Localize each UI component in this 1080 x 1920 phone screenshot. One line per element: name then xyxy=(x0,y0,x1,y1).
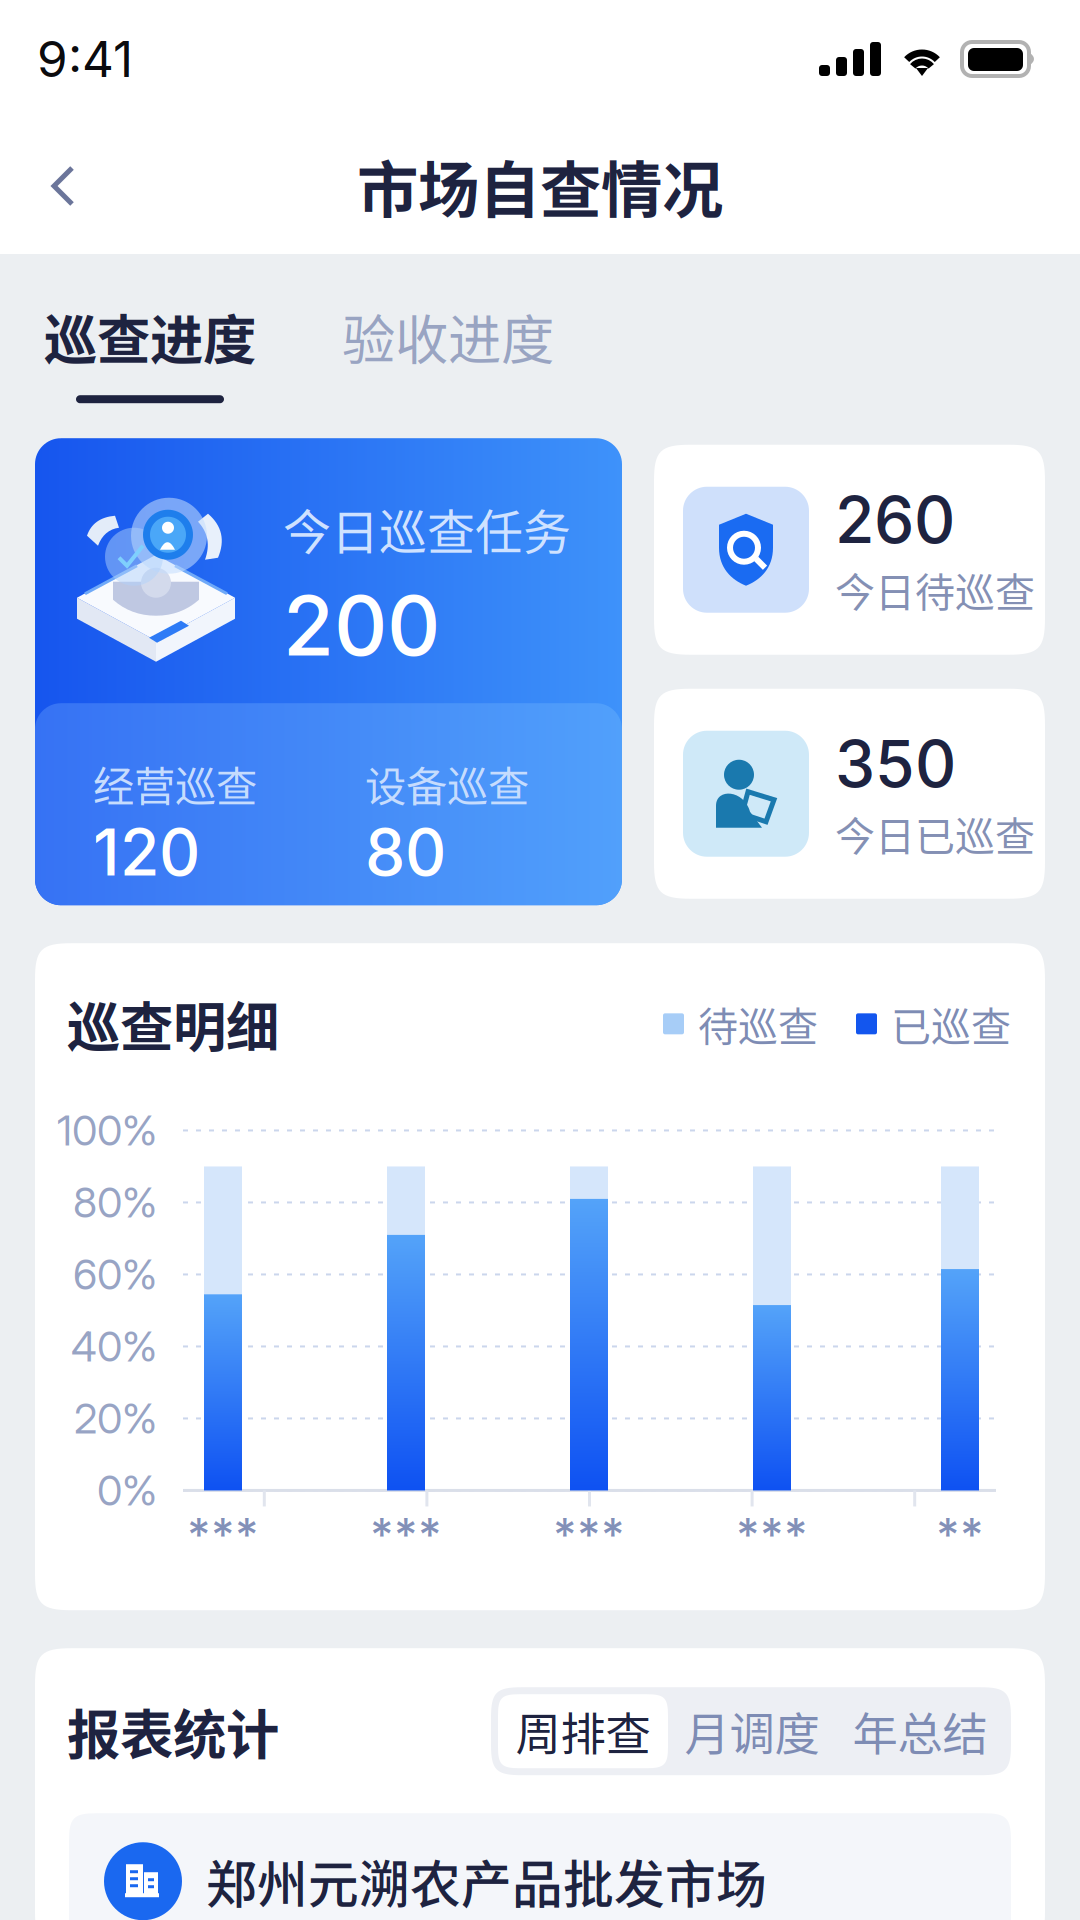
staticText: 今日待巡查 xyxy=(835,560,1035,618)
button[interactable]: 260 xyxy=(654,445,1045,655)
staticText: 今日已巡查 xyxy=(835,804,1035,862)
staticText: 100% xyxy=(57,1105,157,1155)
staticText: 巡查明细 xyxy=(67,985,279,1062)
staticText: *** xyxy=(553,1507,625,1562)
staticText: 设备巡查 xyxy=(365,754,529,813)
staticText: 验收进度 xyxy=(342,298,554,375)
staticText: 120 xyxy=(93,813,200,891)
staticText: 200 xyxy=(283,575,440,675)
button[interactable]: 350 xyxy=(654,689,1045,899)
button[interactable]: 郑州元溯农产品批发市场 xyxy=(69,1813,1011,1920)
staticText: 经营巡查 xyxy=(93,754,257,813)
staticText: 今日巡查任务 xyxy=(283,494,571,563)
staticText: *** xyxy=(187,1507,259,1562)
staticText: 60% xyxy=(73,1249,157,1299)
button[interactable]: 今日巡查任务 xyxy=(35,438,622,905)
staticText: 已巡查 xyxy=(891,995,1011,1053)
staticText: 待巡查 xyxy=(698,995,818,1053)
staticText: 0% xyxy=(97,1465,157,1515)
staticText: 月调度 xyxy=(684,1698,819,1764)
staticText: ** xyxy=(936,1507,984,1562)
staticText: 周排查 xyxy=(515,1698,650,1764)
staticText: 80 xyxy=(365,813,446,891)
staticText: *** xyxy=(370,1507,442,1562)
button[interactable]: 周排查 xyxy=(498,1694,668,1768)
staticText: 260 xyxy=(835,481,955,558)
staticText: 报表统计 xyxy=(67,1693,279,1770)
staticText: 80% xyxy=(73,1177,157,1227)
staticText: 20% xyxy=(74,1393,157,1443)
button[interactable]: 验收进度 xyxy=(342,254,554,438)
staticText: 郑州元溯农产品批发市场 xyxy=(206,1844,767,1918)
button[interactable]: Back xyxy=(0,127,112,245)
staticText: 9:41 xyxy=(37,29,133,89)
staticText: 350 xyxy=(835,725,956,802)
button[interactable]: 年总结 xyxy=(836,1694,1004,1768)
staticText: 市场自查情况 xyxy=(357,142,723,230)
staticText: 40% xyxy=(71,1321,157,1371)
button[interactable]: 月调度 xyxy=(668,1694,836,1768)
staticText: *** xyxy=(736,1507,808,1562)
staticText: 年总结 xyxy=(852,1698,987,1764)
staticText: 巡查进度 xyxy=(44,298,256,375)
button[interactable]: 巡查进度 xyxy=(0,254,342,438)
